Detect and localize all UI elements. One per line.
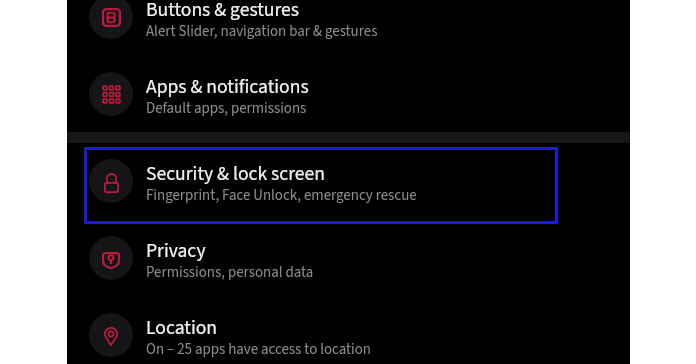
staticText: On – 25 apps have access to location [146, 339, 371, 360]
staticText: Fingerprint, Face Unlock, emergency resc… [146, 185, 417, 206]
staticText: Location [146, 314, 218, 342]
staticText: Permissions, personal data [146, 262, 314, 283]
button[interactable]: Buttons & gestures [67, 0, 630, 54]
other: Location [89, 313, 133, 357]
staticText: Privacy [146, 237, 206, 265]
button[interactable]: Location [67, 295, 630, 364]
other: Apps & notifications [89, 72, 133, 116]
staticText: Apps & notifications [146, 73, 309, 101]
button[interactable]: Apps & notifications [67, 54, 630, 131]
staticText: Buttons & gestures [146, 0, 300, 24]
staticText: Default apps, permissions [146, 98, 307, 119]
button[interactable]: Privacy [67, 218, 630, 295]
staticText: Security & lock screen [146, 160, 326, 188]
other: Security & lock screen [89, 159, 133, 203]
other: Privacy [89, 236, 133, 280]
other: Buttons & gestures [89, 0, 133, 39]
button[interactable]: Security & lock screen [67, 141, 630, 218]
staticText: Alert Slider, navigation bar & gestures [146, 21, 378, 42]
